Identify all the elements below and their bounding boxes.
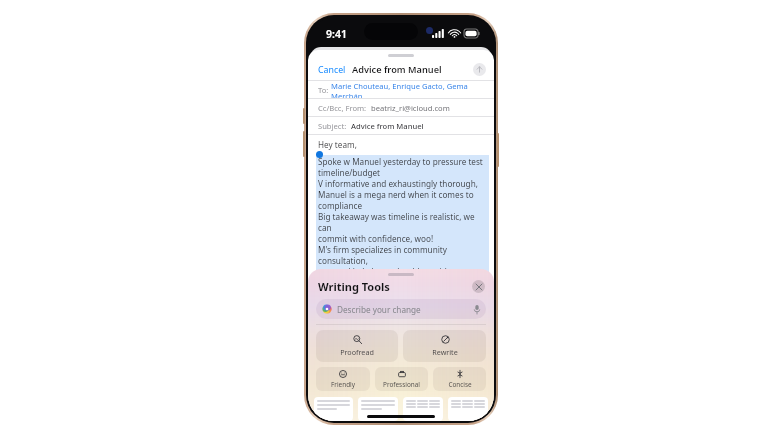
staticText: Advice from Manuel (352, 63, 442, 76)
staticText: Subject: (318, 121, 351, 131)
staticText: compliance (318, 200, 362, 211)
staticText: Big takeaway was timeline is realistic, … (318, 211, 489, 233)
staticText: beatriz_ri@icloud.com (371, 103, 450, 113)
staticText: Cancel (318, 64, 346, 76)
staticText: V informative and exhaustingly thorough, (318, 178, 478, 189)
button[interactable]: Close Writing Tools (472, 280, 485, 293)
staticText: Manuel is a mega nerd when it comes to (318, 189, 474, 200)
staticText: Hey team, (318, 139, 357, 150)
button[interactable]: Cc/Bcc, From: (308, 99, 494, 116)
staticText: Cc/Bcc, From: (318, 103, 371, 113)
button[interactable]: Professional (375, 367, 428, 391)
button[interactable]: Proofread (316, 330, 398, 362)
staticText: them for upcoming community trial (318, 288, 456, 299)
staticText: commit with confidence, woo! (318, 233, 434, 244)
button[interactable]: Cancel (308, 62, 352, 78)
staticText: we need help here, should consider engag… (318, 266, 489, 288)
staticText: Proofread (340, 347, 374, 357)
staticText: 9:41 (326, 27, 347, 41)
button[interactable]: Friendly (316, 367, 370, 391)
staticText: Describe your change (337, 304, 421, 315)
staticText: timeline/budget (318, 167, 381, 178)
button[interactable]: Table suggestion (448, 397, 488, 421)
staticText: M's firm specializes in community consul… (318, 244, 489, 266)
button[interactable]: Subject: (308, 117, 494, 134)
staticText: Advice from Manuel (351, 121, 424, 131)
button[interactable]: Describe your change (316, 299, 486, 319)
button[interactable]: Concise (433, 367, 486, 391)
staticText: Rewrite (432, 347, 458, 357)
button[interactable]: To: (308, 81, 494, 98)
button[interactable]: Send (473, 63, 486, 76)
button[interactable]: Summary suggestion (358, 397, 398, 421)
staticText: To: (318, 85, 331, 95)
staticText: Friendly (331, 380, 355, 389)
button[interactable]: Rewrite (403, 330, 486, 362)
button[interactable]: Summary suggestion (314, 397, 353, 421)
staticText: Marie Chouteau, Enrique Gacto, Gema Merc… (331, 81, 486, 98)
staticText: Concise (448, 380, 472, 389)
staticText: Writing Tools (318, 279, 390, 294)
other: Dictate (474, 305, 480, 314)
staticText: Spoke w Manuel yesterday to pressure tes… (318, 156, 483, 167)
button[interactable]: Table suggestion (403, 397, 443, 421)
staticText: Professional (383, 380, 420, 389)
